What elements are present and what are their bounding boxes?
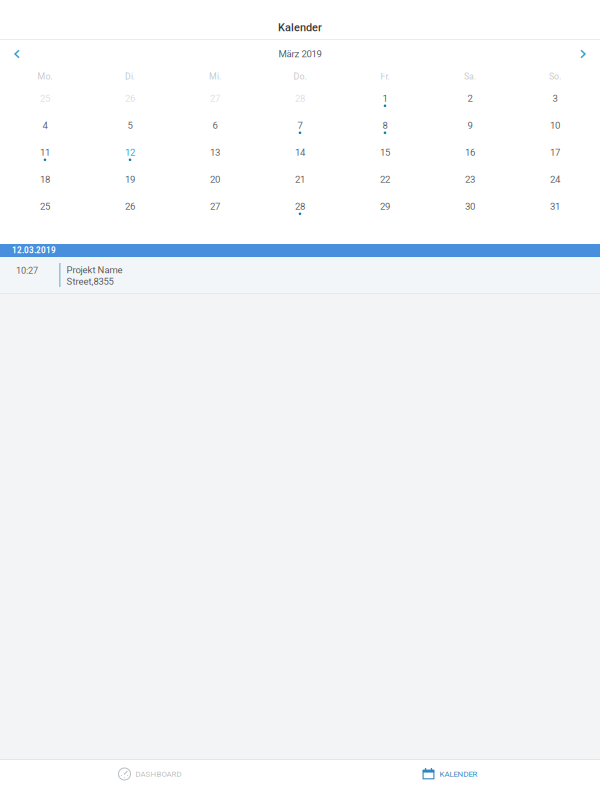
- staticText: Sa.: [464, 71, 476, 82]
- staticText: Kalender: [278, 21, 322, 34]
- staticText: 22: [380, 174, 390, 185]
- staticText: 23: [465, 174, 475, 185]
- staticText: Projekt Name: [67, 264, 123, 276]
- staticText: 15: [380, 147, 390, 158]
- staticText: 25: [40, 201, 50, 212]
- staticText: 24: [550, 174, 560, 185]
- staticText: 3: [552, 93, 557, 104]
- staticText: 12: [125, 147, 135, 158]
- button[interactable]: DASHBOARD: [0, 760, 300, 800]
- button[interactable]: 10:27: [0, 257, 600, 293]
- button[interactable]: Previous month: [0, 40, 34, 68]
- staticText: 9: [467, 120, 472, 131]
- button[interactable]: KALENDER: [300, 760, 600, 800]
- staticText: DASHBOARD: [135, 769, 181, 779]
- staticText: 6: [212, 120, 217, 131]
- staticText: 26: [125, 93, 135, 104]
- staticText: März 2019: [278, 48, 321, 60]
- staticText: 27: [210, 201, 220, 212]
- staticText: Do.: [293, 71, 306, 82]
- staticText: 5: [127, 120, 132, 131]
- staticText: 12.03.2019: [12, 246, 56, 255]
- staticText: 19: [125, 174, 135, 185]
- staticText: 8: [382, 120, 387, 131]
- staticText: So.: [549, 71, 561, 82]
- staticText: 1: [382, 93, 387, 104]
- staticText: Mi.: [209, 71, 221, 82]
- staticText: 30: [465, 201, 475, 212]
- staticText: 20: [210, 174, 220, 185]
- staticText: 17: [550, 147, 560, 158]
- staticText: 11: [40, 147, 50, 158]
- staticText: Fr.: [380, 71, 389, 82]
- staticText: Street,8355: [67, 276, 114, 287]
- staticText: Di.: [125, 71, 135, 82]
- staticText: 10: [550, 120, 560, 131]
- staticText: 29: [380, 201, 390, 212]
- staticText: 2: [467, 93, 472, 104]
- staticText: 10:27: [16, 265, 38, 276]
- staticText: 18: [40, 174, 50, 185]
- staticText: 26: [125, 201, 135, 212]
- staticText: Mo.: [37, 71, 52, 82]
- staticText: 4: [42, 120, 47, 131]
- staticText: 7: [297, 120, 302, 131]
- staticText: 21: [295, 174, 305, 185]
- staticText: 28: [295, 93, 305, 104]
- staticText: 25: [40, 93, 50, 104]
- staticText: 13: [210, 147, 220, 158]
- staticText: 14: [295, 147, 305, 158]
- staticText: 28: [295, 201, 305, 212]
- button[interactable]: Next month: [566, 40, 600, 68]
- staticText: 16: [465, 147, 475, 158]
- staticText: KALENDER: [439, 769, 477, 779]
- staticText: 27: [210, 93, 220, 104]
- staticText: 31: [550, 201, 560, 212]
